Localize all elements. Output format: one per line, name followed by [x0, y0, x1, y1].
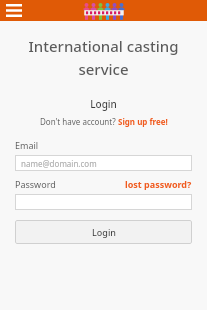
staticText: Login	[90, 97, 117, 111]
button[interactable]: Menu	[4, 0, 24, 21]
staticText: International casting	[28, 36, 179, 56]
staticText: service	[78, 59, 129, 79]
staticText: Login	[92, 226, 116, 238]
button[interactable]: Sign up free!	[118, 116, 168, 127]
staticText: Email	[15, 139, 39, 151]
button[interactable]: name@domain.com	[15, 155, 192, 171]
staticText: Sign up free!	[118, 116, 168, 127]
staticText: name@domain.com	[21, 158, 97, 169]
staticText: Password	[15, 178, 56, 190]
staticText: Don't have account?	[40, 116, 118, 127]
button[interactable]: lost password?	[125, 178, 192, 190]
button[interactable]: Login	[15, 220, 192, 244]
staticText: lost password?	[125, 178, 192, 190]
button[interactable]: Logo	[83, 1, 125, 21]
button[interactable]	[15, 194, 192, 210]
